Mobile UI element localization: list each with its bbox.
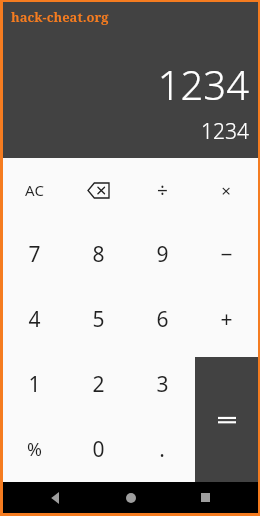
button[interactable]: 4 xyxy=(3,287,66,352)
button[interactable]: 6 xyxy=(130,287,194,352)
button[interactable]: Backspace xyxy=(66,158,130,222)
button[interactable]: Recents xyxy=(183,482,227,513)
staticText: 4 xyxy=(28,305,41,334)
staticText: 1 xyxy=(28,370,41,399)
staticText: 5 xyxy=(92,305,105,334)
button[interactable]: 7 xyxy=(3,222,66,287)
button[interactable]: 0 xyxy=(66,417,130,482)
staticText: 1234 xyxy=(201,117,249,146)
button[interactable]: 3 xyxy=(130,352,194,417)
button[interactable]: × xyxy=(194,158,258,222)
button[interactable]: 5 xyxy=(66,287,130,352)
button[interactable]: 8 xyxy=(66,222,130,287)
staticText: 7 xyxy=(28,240,41,269)
button[interactable]: ÷ xyxy=(130,158,194,222)
staticText: 3 xyxy=(156,370,169,399)
staticText: − xyxy=(220,240,233,269)
button[interactable]: AC xyxy=(3,158,66,222)
staticText: + xyxy=(220,305,233,334)
staticText: . xyxy=(159,435,165,464)
staticText: × xyxy=(221,179,231,202)
staticText: AC xyxy=(25,180,44,200)
staticText: 2 xyxy=(92,370,105,399)
button[interactable]: 2 xyxy=(66,352,130,417)
button[interactable]: Equals xyxy=(195,357,258,482)
staticText: % xyxy=(27,437,42,462)
staticText: ÷ xyxy=(157,177,168,203)
button[interactable]: % xyxy=(3,417,66,482)
staticText: 6 xyxy=(156,305,169,334)
staticText: 9 xyxy=(156,240,169,269)
button[interactable]: 1 xyxy=(3,352,66,417)
button[interactable]: Home xyxy=(109,482,153,513)
button[interactable]: Back xyxy=(34,482,78,513)
staticText: 1234 xyxy=(157,57,249,111)
button[interactable]: 9 xyxy=(130,222,194,287)
staticText: 0 xyxy=(92,435,105,464)
button[interactable]: . xyxy=(130,417,194,482)
staticText: hack-cheat.org xyxy=(11,8,109,26)
staticText: 8 xyxy=(92,240,105,269)
button[interactable]: − xyxy=(194,222,258,287)
button[interactable]: + xyxy=(194,287,258,352)
